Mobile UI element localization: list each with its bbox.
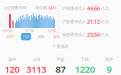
staticText: 成交额 xyxy=(35,5,47,10)
staticText: 21.12 xyxy=(86,18,101,25)
button[interactable]: 平盘 xyxy=(48,57,73,75)
staticText: 深股通净流入 xyxy=(62,32,86,37)
staticText: 9 xyxy=(106,63,111,75)
staticText: 下跌 xyxy=(81,57,89,62)
staticText: 15:00 xyxy=(47,28,56,33)
staticText: 平盘 xyxy=(56,57,64,62)
staticText: 月K xyxy=(53,34,59,39)
button[interactable]: 上涨 xyxy=(24,57,48,75)
button[interactable]: 月K xyxy=(51,33,61,40)
staticText: 亿元 xyxy=(101,19,109,24)
staticText: 沪股通净流入 xyxy=(62,19,86,24)
button[interactable]: 涨停 xyxy=(0,57,24,75)
button[interactable]: 跌停 xyxy=(97,57,121,75)
staticText: 个股涨跌 xyxy=(52,44,68,49)
staticText: 上涨 xyxy=(32,57,40,62)
button[interactable]: 周K xyxy=(36,33,46,40)
staticText: 23.54 xyxy=(86,31,101,38)
staticText: 87 xyxy=(55,63,65,75)
button[interactable]: 下跌 xyxy=(73,57,97,75)
staticText: 涨停 xyxy=(8,57,16,62)
staticText: 分时 xyxy=(6,34,14,39)
staticText: 09:30 xyxy=(3,28,12,33)
staticText: 亿元 xyxy=(101,6,109,11)
staticText: 11:30 xyxy=(25,28,34,33)
button[interactable]: 日K xyxy=(21,33,31,40)
staticText: 3113 xyxy=(26,63,46,75)
staticText: 沪股通净流入 xyxy=(62,6,86,11)
staticText: 亿元 xyxy=(101,32,109,37)
staticText: 跌停 xyxy=(105,57,113,62)
staticText: 周K xyxy=(38,34,44,39)
button[interactable]: 分时 xyxy=(4,33,16,40)
staticText: 1220 xyxy=(75,63,95,75)
staticText: 44.66 xyxy=(86,5,101,12)
staticText: 上证指数分时 xyxy=(3,5,27,10)
staticText: 120 xyxy=(5,63,20,75)
staticText: 3421 xyxy=(47,5,56,10)
staticText: 日K xyxy=(23,34,29,39)
